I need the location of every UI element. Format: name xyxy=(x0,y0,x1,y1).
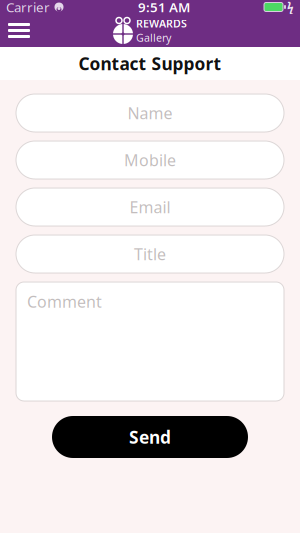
staticText: Mobile xyxy=(124,149,176,171)
staticText: ϟ xyxy=(287,0,294,15)
button[interactable]: Send xyxy=(52,416,248,458)
button[interactable]: Email xyxy=(16,188,284,226)
staticText: Name xyxy=(127,102,172,124)
button[interactable]: Menu xyxy=(0,16,38,45)
staticText: 9:51 AM xyxy=(138,0,190,16)
staticText: REWARDS xyxy=(136,16,187,30)
button[interactable]: Rewards Gallery home xyxy=(113,16,187,45)
button[interactable]: Mobile xyxy=(16,141,284,179)
staticText: Title xyxy=(134,243,166,265)
staticText: Email xyxy=(129,196,170,218)
button[interactable]: Title xyxy=(16,235,284,273)
staticText: Carrier xyxy=(6,0,50,16)
button[interactable]: Name xyxy=(16,94,284,132)
staticText: Send xyxy=(129,425,171,448)
staticText: Gallery xyxy=(136,30,171,45)
button[interactable]: Comment xyxy=(16,282,284,401)
staticText: Contact Support xyxy=(78,52,221,75)
staticText: Comment xyxy=(27,291,102,312)
